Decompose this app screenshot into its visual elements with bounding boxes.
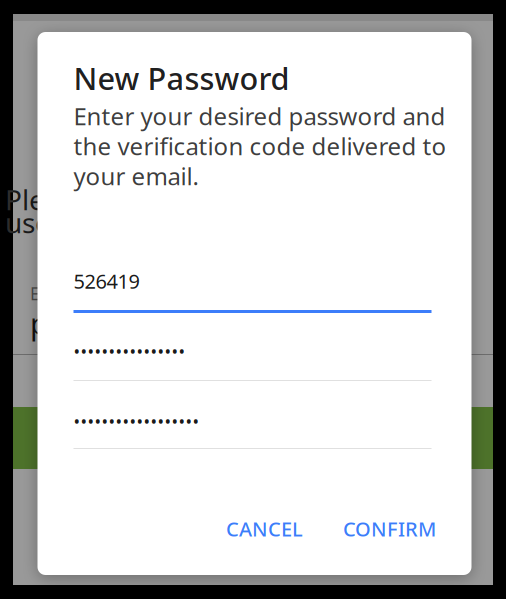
staticText: •••••••••••••••••• <box>73 409 199 432</box>
staticText: CANCEL <box>226 515 303 542</box>
staticText: used when creating your account here. <box>5 204 451 241</box>
staticText: New Password <box>73 58 289 98</box>
staticText: CONFIRM <box>343 515 436 542</box>
staticText: Enter your desired password and <box>73 100 445 132</box>
staticText: Email <box>30 282 74 305</box>
staticText: 526419 <box>73 268 139 294</box>
staticText: Please enter the email address that you … <box>5 181 451 218</box>
staticText: your email. <box>73 160 198 192</box>
button[interactable]: CANCEL <box>216 505 313 552</box>
staticText: pat.lawson@example.com <box>30 303 391 342</box>
staticText: the verification code delivered to <box>73 130 446 162</box>
button[interactable]: CONFIRM <box>333 505 446 552</box>
staticText: •••••••••••••••• <box>73 339 185 362</box>
